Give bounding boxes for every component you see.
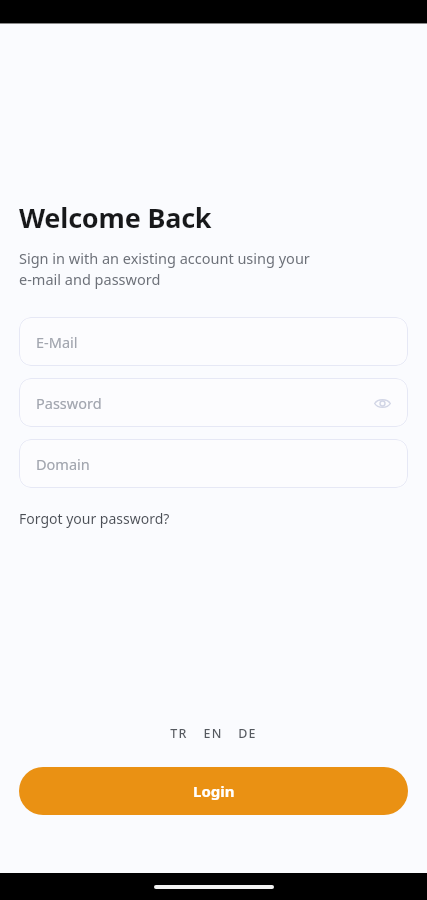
button[interactable]: Show password [368, 389, 396, 417]
staticText: Domain [36, 454, 90, 474]
button[interactable]: TR [167, 722, 191, 745]
staticText: Forgot your password? [19, 509, 170, 528]
staticText: Sign in with an existing account using y… [19, 248, 310, 290]
staticText: Welcome Back [19, 199, 212, 236]
staticText: EN [203, 725, 223, 742]
staticText: Password [36, 393, 102, 413]
button[interactable]: Forgot your password? [19, 507, 170, 530]
staticText: DE [238, 725, 257, 742]
button[interactable]: Password [19, 378, 408, 427]
staticText: Login [193, 781, 235, 801]
button[interactable]: Domain [19, 439, 408, 488]
button[interactable]: E-Mail [19, 317, 408, 366]
staticText: E-Mail [36, 332, 78, 352]
button[interactable]: EN [200, 722, 226, 745]
button[interactable]: Login [19, 767, 408, 815]
staticText: TR [170, 725, 188, 742]
button[interactable]: DE [235, 722, 260, 745]
